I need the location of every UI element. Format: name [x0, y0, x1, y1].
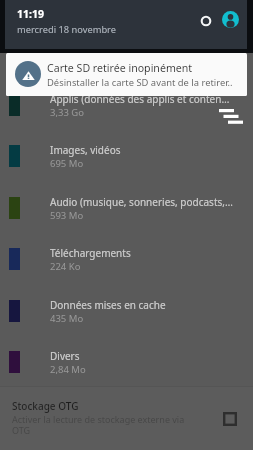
- button[interactable]: Stockage OTG: [0, 387, 253, 450]
- staticText: Données mises en cache: [50, 298, 166, 312]
- button[interactable]: Activer le stockage OTG: [223, 412, 237, 426]
- staticText: Carte SD retirée inopinément: [47, 61, 193, 75]
- staticText: Images, vidéos: [50, 143, 121, 157]
- button[interactable]: Données mises en cache: [0, 298, 253, 349]
- staticText: 695 Mo: [50, 157, 84, 170]
- button[interactable]: Audio (musique, sonneries, podcasts,…: [0, 195, 253, 246]
- staticText: 593 Mo: [50, 209, 84, 222]
- button[interactable]: Téléchargements: [0, 246, 253, 297]
- staticText: 435 Mo: [50, 312, 84, 325]
- button[interactable]: Carte SD retirée inopinément: [6, 53, 247, 96]
- button[interactable]: Profil utilisateur: [222, 11, 239, 28]
- staticText: Divers: [50, 349, 80, 363]
- button[interactable]: Trier: [219, 109, 245, 129]
- staticText: Stockage OTG: [12, 399, 79, 413]
- staticText: Applis (données des applis et conten…: [50, 92, 230, 106]
- staticText: Activer la lecture de stockage externe v…: [12, 413, 200, 436]
- staticText: Téléchargements: [50, 246, 131, 260]
- staticText: 11:19: [17, 7, 44, 21]
- staticText: Audio (musique, sonneries, podcasts,…: [50, 195, 233, 209]
- button[interactable]: Applis (données des applis et conten…: [0, 92, 253, 143]
- button[interactable]: Divers: [0, 349, 253, 400]
- staticText: 2,84 Mo: [50, 363, 86, 376]
- button[interactable]: Chargement: [199, 14, 213, 28]
- button[interactable]: Images, vidéos: [0, 143, 253, 194]
- staticText: Désinstaller la carte SD avant de la ret…: [47, 76, 233, 89]
- staticText: 3,33 Go: [50, 106, 84, 119]
- staticText: 224 Ko: [50, 260, 81, 273]
- staticText: mercredi 18 novembre: [17, 23, 116, 36]
